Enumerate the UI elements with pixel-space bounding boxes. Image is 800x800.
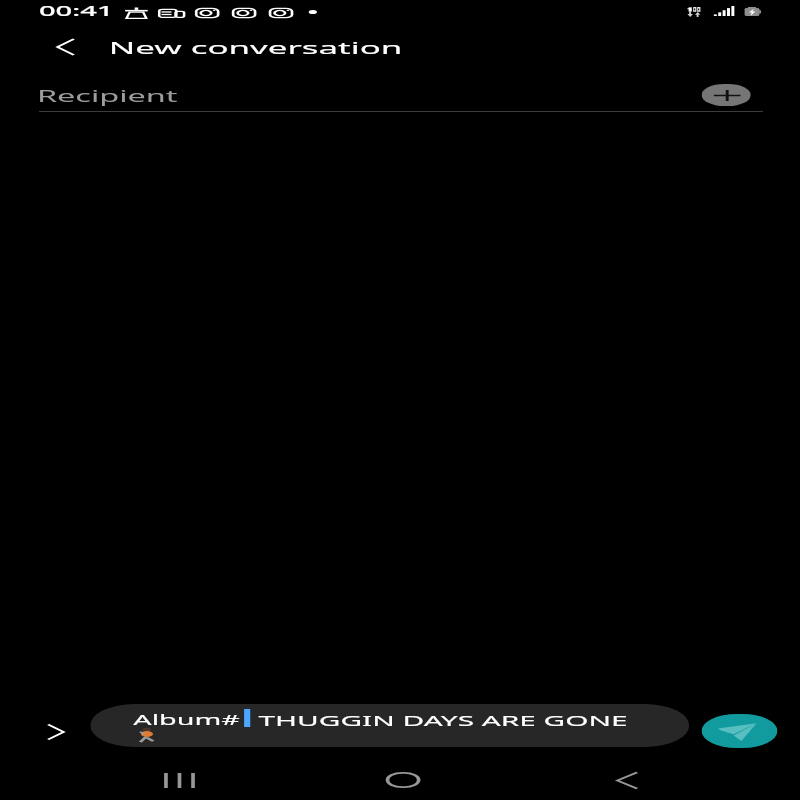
button[interactable]: Add recipient (701, 84, 751, 106)
button[interactable]: Album# (90, 704, 689, 747)
button[interactable]: Back (35, 30, 94, 64)
button[interactable]: Recents (137, 763, 219, 797)
staticText: 00:41 (39, 1, 115, 20)
staticText: Album# (133, 710, 240, 729)
button[interactable]: Send (701, 714, 777, 748)
staticText: Recipient (37, 85, 178, 107)
button[interactable]: Show more (41, 722, 70, 742)
button[interactable]: Home (361, 763, 443, 797)
button[interactable]: Back (585, 763, 667, 797)
staticText: THUGGIN DAYS ARE GONE (258, 710, 628, 730)
staticText: New conversation (109, 36, 404, 59)
